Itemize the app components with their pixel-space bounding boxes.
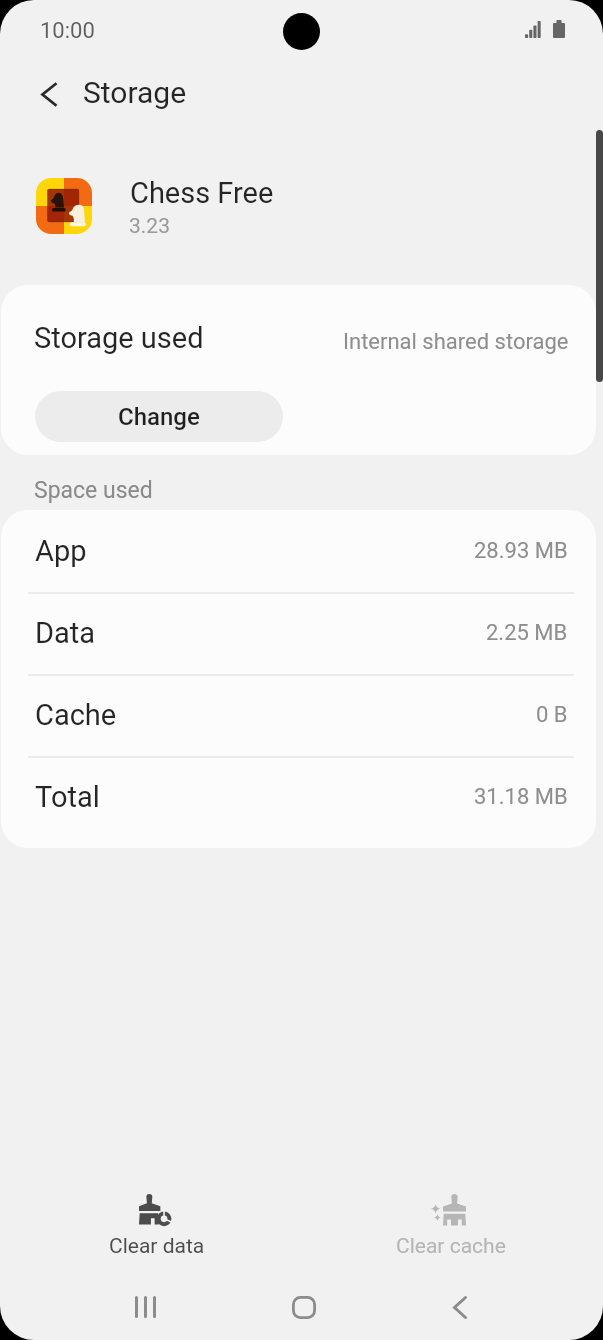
button[interactable]: Clear cache: [369, 1186, 529, 1262]
button[interactable]: Back: [24, 69, 74, 119]
staticText: 31.18 MB: [474, 784, 568, 810]
staticText: 2.25 MB: [486, 620, 568, 646]
staticText: 3.23: [129, 214, 170, 239]
button[interactable]: Home: [263, 1274, 344, 1340]
staticText: Clear cache: [396, 1234, 506, 1259]
staticText: Cache: [35, 698, 117, 732]
staticText: Data: [35, 616, 96, 650]
staticText: Storage: [83, 75, 187, 110]
staticText: Storage used: [34, 321, 204, 355]
staticText: Space used: [34, 477, 153, 504]
button[interactable]: Recent apps: [105, 1274, 186, 1340]
button[interactable]: Clear data: [75, 1186, 235, 1262]
button[interactable]: Cache: [35, 674, 568, 756]
staticText: Change: [118, 403, 200, 431]
button[interactable]: App: [35, 510, 568, 592]
staticText: Clear data: [109, 1234, 205, 1259]
staticText: App: [35, 534, 87, 568]
staticText: Total: [35, 780, 100, 814]
button[interactable]: Change: [35, 391, 283, 442]
staticText: 0 B: [536, 702, 568, 728]
staticText: Internal shared storage: [343, 329, 569, 355]
staticText: 28.93 MB: [474, 538, 568, 564]
button[interactable]: Data: [35, 592, 568, 674]
button[interactable]: Back: [419, 1274, 500, 1340]
staticText: Chess Free: [130, 176, 274, 210]
staticText: 10:00: [40, 18, 95, 44]
button[interactable]: Total: [35, 756, 568, 838]
